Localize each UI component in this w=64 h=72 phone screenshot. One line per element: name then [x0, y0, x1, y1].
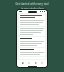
button[interactable]: Profile [39, 60, 44, 65]
button[interactable]: Search [26, 60, 31, 65]
staticText: in one single place [21, 7, 44, 11]
button[interactable] [19, 27, 45, 36]
button[interactable]: Home [20, 60, 25, 65]
button[interactable] [19, 48, 45, 56]
button[interactable]: Documents [33, 60, 38, 65]
button[interactable] [19, 14, 45, 26]
button[interactable] [19, 37, 45, 47]
staticText: Get started with every tool [15, 2, 49, 6]
